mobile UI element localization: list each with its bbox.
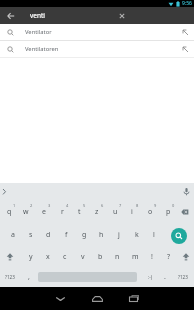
button[interactable]: n	[108, 249, 126, 265]
button[interactable]: p	[159, 204, 177, 220]
button[interactable]: c	[56, 249, 74, 265]
button[interactable]: x	[39, 249, 57, 265]
button[interactable]	[119, 287, 149, 310]
button[interactable]	[82, 287, 112, 310]
button[interactable]: ,	[20, 269, 38, 285]
button[interactable]: g	[75, 227, 93, 243]
button[interactable]: ?123	[1, 269, 19, 285]
button[interactable]: :-)	[141, 269, 159, 285]
staticText: z	[95, 207, 99, 217]
button[interactable]: w	[17, 204, 35, 220]
button[interactable]: b	[91, 249, 109, 265]
staticText: k	[135, 230, 139, 240]
button[interactable]: .	[156, 269, 174, 285]
button[interactable]: s	[22, 227, 40, 243]
staticText: e	[42, 207, 46, 217]
button[interactable]: Ventilatoren	[0, 41, 194, 57]
button[interactable]: u	[106, 204, 124, 220]
staticText: n	[115, 252, 120, 262]
button[interactable]	[176, 204, 194, 220]
button[interactable]: t	[70, 204, 88, 220]
staticText: 7	[119, 203, 122, 208]
button[interactable]	[1, 249, 19, 265]
button[interactable]: f	[57, 227, 75, 243]
button[interactable]	[45, 287, 75, 310]
staticText: ,	[28, 272, 30, 282]
staticText: d	[46, 230, 51, 240]
staticText: t	[78, 207, 81, 217]
staticText: o	[148, 207, 153, 217]
staticText: ?	[167, 252, 171, 262]
button[interactable]: h	[92, 227, 110, 243]
staticText: f	[65, 230, 68, 240]
button[interactable]: r	[53, 204, 71, 220]
staticText: h	[99, 230, 104, 240]
staticText: 2	[30, 203, 33, 208]
button[interactable]: Ventilator	[0, 24, 194, 40]
button[interactable]: i	[123, 204, 141, 220]
button[interactable]	[112, 7, 132, 24]
staticText: r	[61, 207, 64, 217]
staticText: 3	[48, 203, 51, 208]
staticText: 9:56	[182, 0, 192, 7]
staticText: c	[63, 252, 67, 262]
button[interactable]: q	[0, 204, 18, 220]
staticText: ?123	[178, 274, 188, 280]
staticText: s	[29, 230, 33, 240]
staticText: 0	[172, 203, 175, 208]
staticText: m	[132, 252, 139, 262]
staticText: 5	[83, 203, 86, 208]
staticText: 9	[154, 203, 157, 208]
button[interactable]: d	[39, 227, 57, 243]
staticText: x	[46, 252, 50, 262]
staticText: y	[29, 252, 33, 262]
staticText: u	[113, 207, 118, 217]
button[interactable]	[0, 7, 22, 24]
staticText: q	[7, 207, 12, 217]
staticText: :-)	[148, 274, 153, 280]
button[interactable]: m	[126, 249, 144, 265]
staticText: w	[23, 207, 29, 217]
staticText: 1	[13, 203, 16, 208]
button[interactable]: ?	[160, 249, 178, 265]
staticText: 4	[66, 203, 69, 208]
button[interactable]	[177, 249, 194, 265]
staticText: l	[153, 230, 155, 240]
button[interactable]	[169, 226, 189, 246]
staticText: v	[81, 252, 85, 262]
button[interactable]: ?123	[174, 269, 192, 285]
staticText: .	[164, 272, 166, 282]
staticText: j	[118, 230, 120, 240]
staticText: Ventilatoren	[25, 45, 59, 53]
button[interactable]: e	[35, 204, 53, 220]
button[interactable]	[178, 183, 194, 200]
staticText: Ventilator	[25, 28, 52, 36]
staticText: 8	[136, 203, 139, 208]
staticText: i	[131, 207, 133, 217]
staticText: !	[151, 252, 153, 262]
staticText: venti	[30, 11, 46, 20]
staticText: a	[11, 230, 15, 240]
button[interactable]: j	[110, 227, 128, 243]
button[interactable]	[0, 183, 14, 200]
staticText: ?123	[5, 274, 15, 280]
button[interactable]: z	[88, 204, 106, 220]
button[interactable]: o	[141, 204, 159, 220]
button[interactable]: v	[74, 249, 92, 265]
button[interactable]: a	[4, 227, 22, 243]
staticText: b	[98, 252, 103, 262]
button[interactable]: !	[143, 249, 161, 265]
button[interactable]: y	[22, 249, 40, 265]
staticText: p	[166, 207, 171, 217]
staticText: g	[82, 230, 87, 240]
button[interactable]: k	[128, 227, 146, 243]
staticText: 6	[101, 203, 104, 208]
button[interactable]: l	[145, 227, 163, 243]
